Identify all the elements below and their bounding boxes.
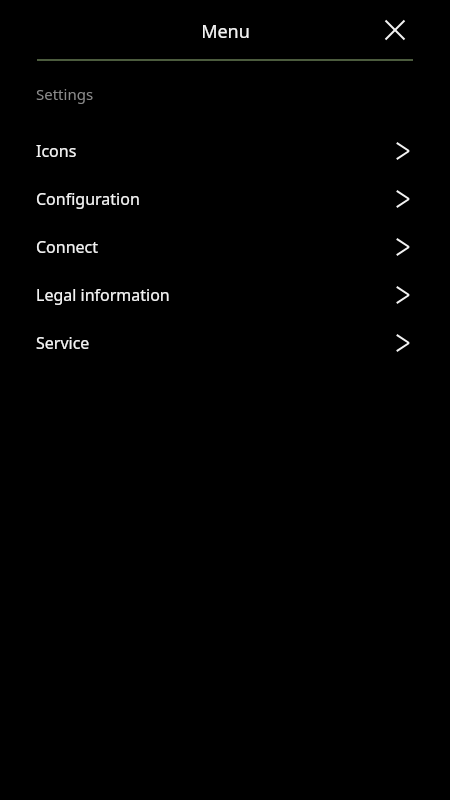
button[interactable]: Icons [0, 127, 450, 175]
staticText: Menu [201, 19, 250, 44]
button[interactable]: Close [380, 15, 410, 45]
button[interactable]: Legal information [0, 271, 450, 319]
button[interactable]: Connect [0, 223, 450, 271]
staticText: Settings [36, 84, 94, 104]
staticText: Legal information [36, 284, 170, 306]
staticText: Configuration [36, 188, 140, 210]
staticText: Connect [36, 236, 99, 258]
staticText: Icons [36, 140, 77, 162]
button[interactable]: Configuration [0, 175, 450, 223]
button[interactable]: Service [0, 319, 450, 367]
staticText: Service [36, 332, 90, 354]
